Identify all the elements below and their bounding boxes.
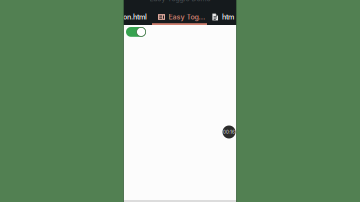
staticText: Easy Toggle Demo <box>149 0 210 3</box>
staticText: on.html <box>123 13 147 21</box>
button[interactable]: Easy Tog… <box>158 9 205 25</box>
staticText: htm <box>222 13 234 21</box>
button[interactable]: htm <box>212 9 234 25</box>
button[interactable]: on.html <box>123 9 147 25</box>
staticText: 00:16 <box>223 129 235 135</box>
staticText: Easy Tog… <box>168 13 205 21</box>
button[interactable] <box>126 27 146 37</box>
